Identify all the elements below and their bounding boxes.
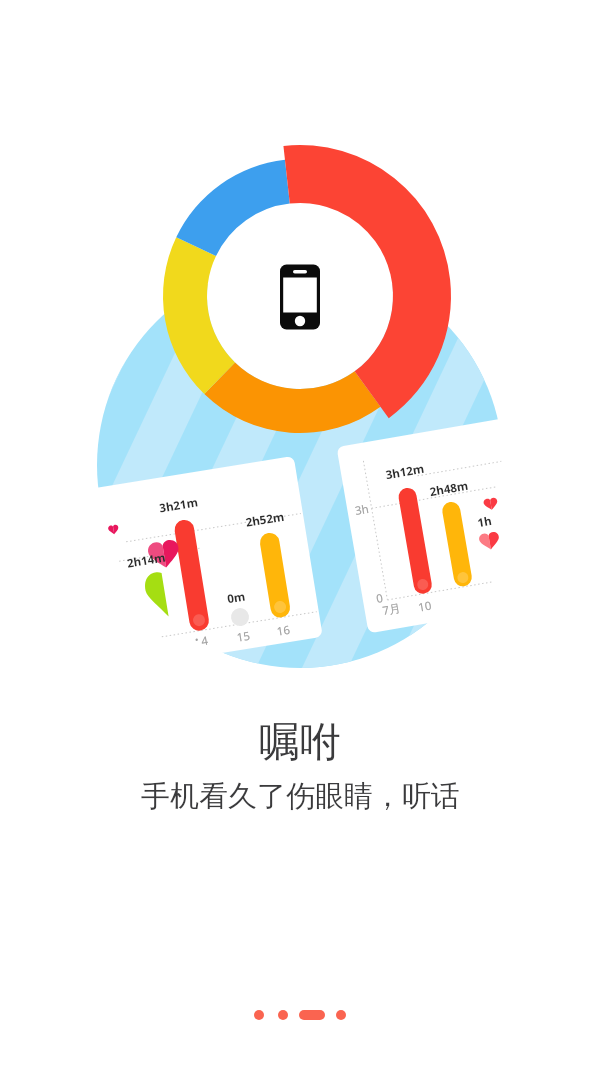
button[interactable] xyxy=(336,1010,346,1020)
staticText: 手机看久了伤眼睛，听话 xyxy=(141,778,460,815)
staticText: 嘱咐 xyxy=(259,717,341,769)
button[interactable] xyxy=(254,1010,264,1020)
button[interactable] xyxy=(278,1010,288,1020)
button[interactable] xyxy=(299,1010,325,1020)
